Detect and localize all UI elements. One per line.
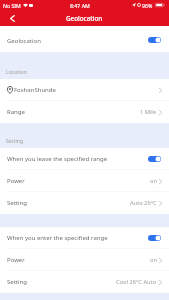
button[interactable]: Range — [0, 101, 169, 123]
button[interactable]: FoshanShunde — [0, 79, 169, 101]
staticText: No SIM — [3, 2, 21, 9]
staticText: on — [150, 256, 157, 264]
staticText: Setting — [7, 278, 27, 286]
staticText: Range — [7, 108, 25, 116]
staticText: Auto 26°C — [130, 199, 157, 207]
staticText: Setting — [6, 137, 24, 144]
staticText: Location — [6, 68, 27, 75]
button[interactable]: Geolocation — [0, 26, 169, 52]
button[interactable]: Setting — [0, 271, 169, 293]
staticText: 96% — [142, 2, 153, 9]
button[interactable]: Back — [0, 10, 24, 26]
staticText: Setting — [7, 199, 27, 207]
button[interactable]: When you leave the specified range — [0, 148, 169, 170]
button[interactable]: Toggle Geolocation — [148, 37, 161, 43]
staticText: Power — [7, 177, 25, 185]
staticText: FoshanShunde — [14, 86, 56, 94]
staticText: Geolocation — [66, 14, 103, 23]
staticText: 8:47 AM — [70, 2, 90, 9]
button[interactable]: When you enter the specified range — [0, 227, 169, 249]
button[interactable]: Power — [0, 170, 169, 192]
staticText: When you enter the specified range — [7, 234, 108, 242]
staticText: on — [150, 177, 157, 185]
button[interactable]: Toggle When you enter the specified rang… — [148, 235, 161, 241]
button[interactable]: Power — [0, 249, 169, 271]
staticText: Power — [7, 256, 25, 264]
staticText: When you leave the specified range — [7, 155, 108, 163]
button[interactable]: Setting — [0, 192, 169, 214]
staticText: 1 Mile — [140, 108, 157, 116]
staticText: Geolocation — [7, 37, 41, 45]
staticText: Cool 26°C Auto — [116, 278, 157, 286]
button[interactable]: Toggle When you leave the specified rang… — [148, 156, 161, 162]
